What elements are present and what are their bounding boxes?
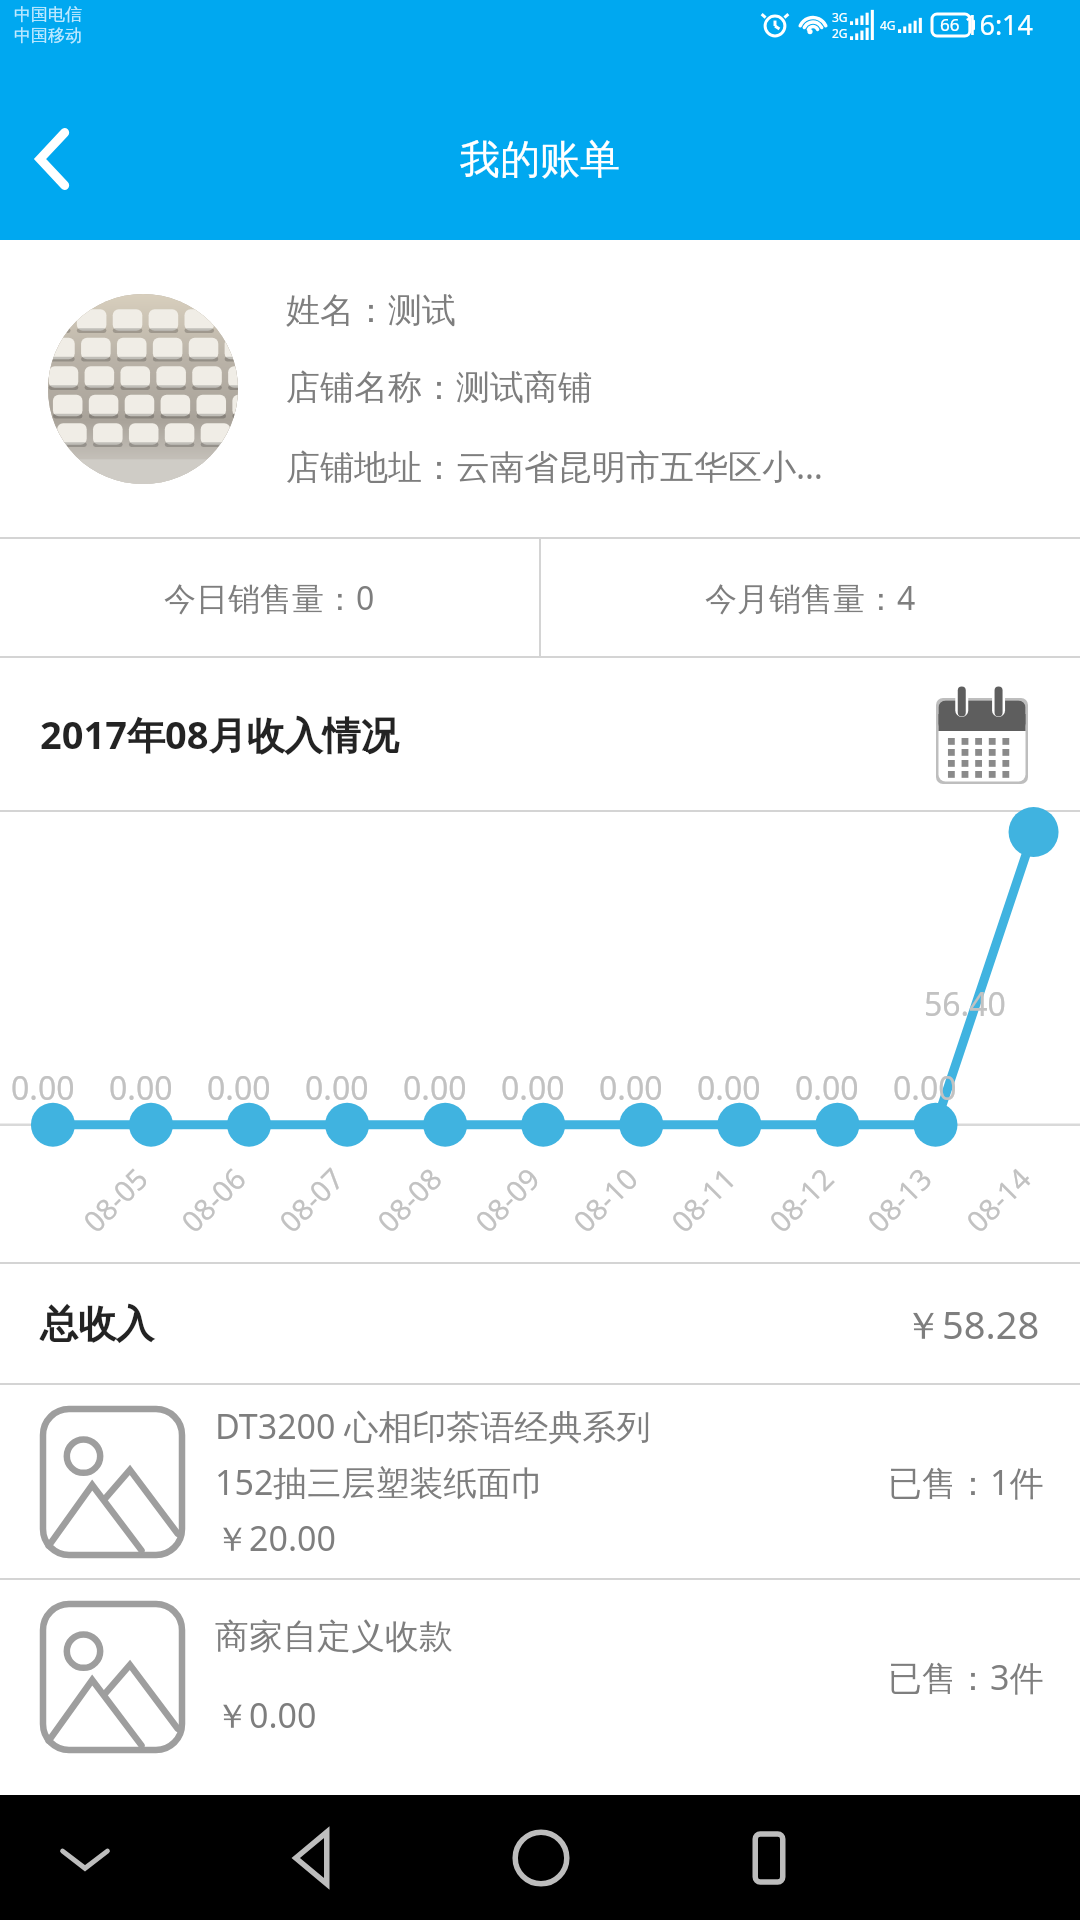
staticText: 4G <box>880 17 896 33</box>
staticText: DT3200 心相印茶语经典系列 <box>215 1403 651 1449</box>
staticText: 0.00 <box>109 1066 173 1110</box>
staticText: 0.00 <box>697 1066 761 1110</box>
staticText: 56.40 <box>924 982 1006 1026</box>
staticText: 已售：3件 <box>888 1654 1044 1700</box>
staticText: 姓名：测试 <box>286 289 456 332</box>
button[interactable]: 今月销售量：4 <box>541 539 1080 656</box>
staticText: 08-10 <box>564 1159 646 1240</box>
staticText: ￥20.00 <box>215 1515 336 1561</box>
staticText: ￥58.28 <box>904 1298 1040 1350</box>
staticText: 0.00 <box>795 1066 859 1110</box>
staticText: 2017年08月收入情况 <box>40 708 399 760</box>
staticText: 商家自定义收款 <box>215 1615 453 1658</box>
button[interactable]: Home <box>486 1803 596 1913</box>
button[interactable]: 商家自定义收款 <box>0 1580 1080 1773</box>
staticText: ￥0.00 <box>215 1692 317 1738</box>
staticText: 08-13 <box>858 1159 940 1240</box>
staticText: 08-05 <box>74 1159 156 1240</box>
staticText: 66 <box>940 13 960 36</box>
staticText: 0.00 <box>893 1066 957 1110</box>
staticText: 今日销售量：0 <box>164 576 375 620</box>
staticText: 0.00 <box>207 1066 271 1110</box>
staticText: 我的账单 <box>460 134 620 184</box>
staticText: 08-07 <box>270 1159 352 1240</box>
staticText: 0.00 <box>403 1066 467 1110</box>
button[interactable]: Back <box>258 1803 368 1913</box>
staticText: 今月销售量：4 <box>705 576 916 620</box>
staticText: 0.00 <box>11 1066 75 1110</box>
button[interactable]: Select month <box>930 682 1034 786</box>
button[interactable]: 总收入 <box>0 1264 1080 1383</box>
staticText: 152抽三层塑装纸面巾 <box>215 1459 546 1505</box>
staticText: 0.00 <box>305 1066 369 1110</box>
staticText: 总收入 <box>40 1300 154 1348</box>
staticText: 店铺名称：测试商铺 <box>286 366 592 409</box>
button[interactable]: Hide keyboard <box>30 1803 140 1913</box>
staticText: 16:14 <box>964 6 1034 43</box>
staticText: 2G <box>832 25 848 41</box>
staticText: 店铺地址：云南省昆明市五华区小… <box>286 443 823 489</box>
staticText: 0.00 <box>599 1066 663 1110</box>
staticText: 08-12 <box>760 1159 842 1240</box>
staticText: 08-14 <box>957 1159 1039 1240</box>
staticText: 08-06 <box>172 1159 254 1240</box>
button[interactable]: 今日销售量：0 <box>0 539 539 656</box>
button[interactable]: Back <box>0 104 110 214</box>
button[interactable]: Recents <box>714 1803 824 1913</box>
staticText: 08-09 <box>466 1159 548 1240</box>
staticText: 中国电信 <box>14 4 82 25</box>
button[interactable]: 姓名：测试 <box>0 240 1080 537</box>
staticText: 08-11 <box>662 1159 744 1240</box>
staticText: 中国移动 <box>14 25 82 46</box>
staticText: 08-08 <box>368 1159 450 1240</box>
button[interactable]: DT3200 心相印茶语经典系列 <box>0 1385 1080 1578</box>
staticText: 3G <box>832 9 848 25</box>
staticText: 0.00 <box>501 1066 565 1110</box>
staticText: 已售：1件 <box>888 1459 1044 1505</box>
